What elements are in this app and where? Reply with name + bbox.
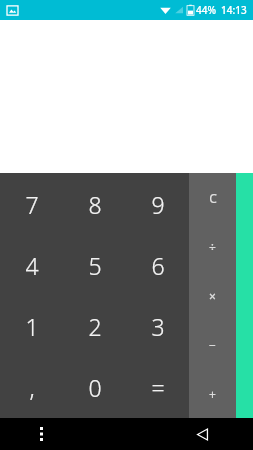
staticText: 14:13 [221,3,247,17]
staticText: 5 [88,250,102,281]
button[interactable]: 1 [0,296,63,357]
staticText: C [209,190,217,206]
staticText: 4 [25,250,39,281]
button[interactable]: 6 [126,235,189,296]
button[interactable]: Multiply [189,271,236,320]
button[interactable]: Divide [189,222,236,271]
staticText: 8 [88,189,102,220]
button[interactable]: 8 [63,173,126,235]
button[interactable]: Clear [189,173,236,222]
button[interactable]: 9 [126,173,189,235]
button[interactable]: 0 [63,357,126,418]
staticText: 44% [196,3,216,17]
staticText: = [151,372,165,403]
button[interactable]: = [126,357,189,418]
button[interactable]: 7 [0,173,63,235]
button[interactable]: 4 [0,235,63,296]
staticText: ÷ [209,239,216,255]
button[interactable]: Minus [189,320,236,369]
button[interactable]: 3 [126,296,189,357]
staticText: + [209,386,216,402]
staticText: , [29,372,35,403]
button[interactable]: Back [190,422,214,446]
staticText: 1 [25,311,39,342]
staticText: 9 [151,189,165,220]
staticText: − [209,337,216,353]
staticText: 2 [88,311,102,342]
button[interactable]: 5 [63,235,126,296]
button[interactable]: , [0,357,63,418]
button[interactable]: Plus [189,369,236,418]
staticText: 0 [88,372,102,403]
staticText: × [209,288,216,304]
button[interactable]: 2 [63,296,126,357]
button[interactable]: Menu [30,423,52,445]
staticText: 6 [151,250,165,281]
staticText: 7 [25,189,39,220]
staticText: 3 [151,311,165,342]
